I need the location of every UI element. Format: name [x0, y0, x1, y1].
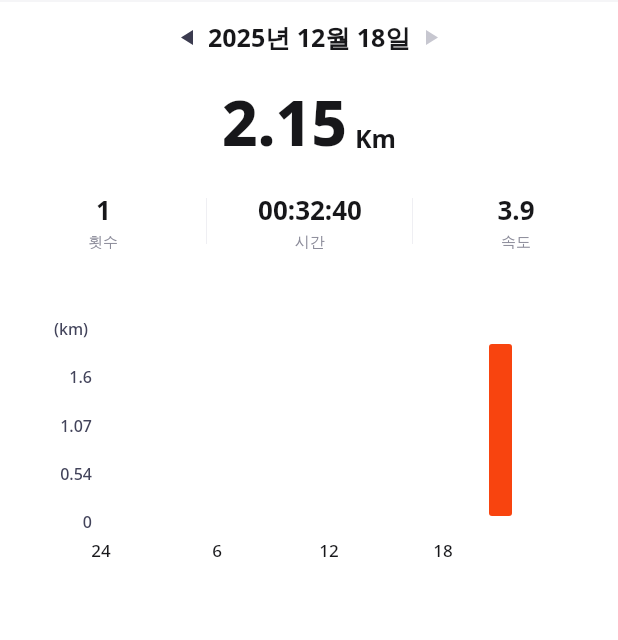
staticText: 00:32:40 [258, 192, 362, 227]
staticText: 6 [212, 539, 222, 562]
staticText: 3.9 [497, 192, 535, 227]
staticText: 0.54 [60, 463, 92, 485]
staticText: (km) [54, 318, 89, 340]
button[interactable]: Next day [419, 24, 445, 50]
staticText: 1.6 [69, 366, 92, 388]
button[interactable]: Distance 2.15 km [489, 344, 512, 516]
staticText: Km [355, 121, 396, 155]
button[interactable]: 2025년 12월 18일 [208, 20, 411, 54]
staticText: 속도 [501, 233, 531, 250]
staticText: 1.07 [60, 415, 92, 437]
button[interactable]: 1 [0, 192, 206, 250]
staticText: 12 [319, 539, 339, 562]
button[interactable]: Previous day [174, 24, 200, 50]
staticText: 18 [433, 539, 453, 562]
staticText: 24 [91, 539, 111, 562]
staticText: 시간 [295, 233, 325, 250]
staticText: 1 [96, 192, 111, 227]
staticText: 횟수 [88, 233, 118, 250]
button[interactable]: 00:32:40 [207, 192, 412, 250]
button[interactable]: 3.9 [413, 192, 618, 250]
staticText: 0 [82, 511, 92, 533]
staticText: 2.15 [222, 80, 348, 164]
